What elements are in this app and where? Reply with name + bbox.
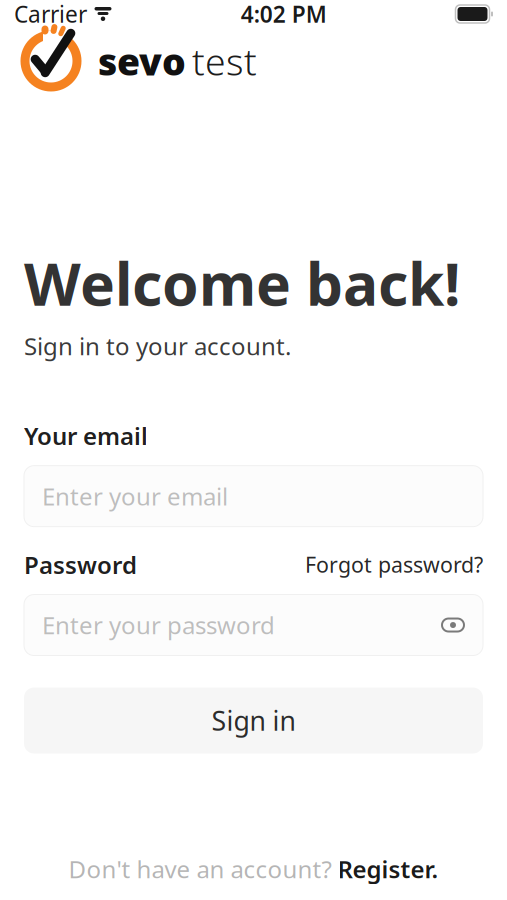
staticText: Don't have an account? [68,853,331,885]
staticText: Welcome back! [24,244,461,322]
staticText: Carrier [14,0,87,29]
staticText: sevo [98,36,186,86]
staticText: Sign in [211,703,295,738]
staticText: Your email [24,420,148,452]
staticText: Register. [337,853,438,885]
button[interactable]: Enter your email [24,466,483,527]
staticText: test [192,36,257,86]
staticText: Sign in to your account. [24,330,291,362]
button[interactable]: Forgot password? [305,550,483,579]
staticText: Enter your password [42,609,275,641]
staticText: Password [24,549,137,581]
button[interactable]: Sign in [24,687,483,753]
button[interactable]: Enter your password [24,594,483,655]
staticText: 4:02 PM [241,0,327,29]
staticText: Forgot password? [305,550,483,579]
staticText: Enter your email [42,480,228,512]
button[interactable]: Don't have an account? [0,852,507,886]
